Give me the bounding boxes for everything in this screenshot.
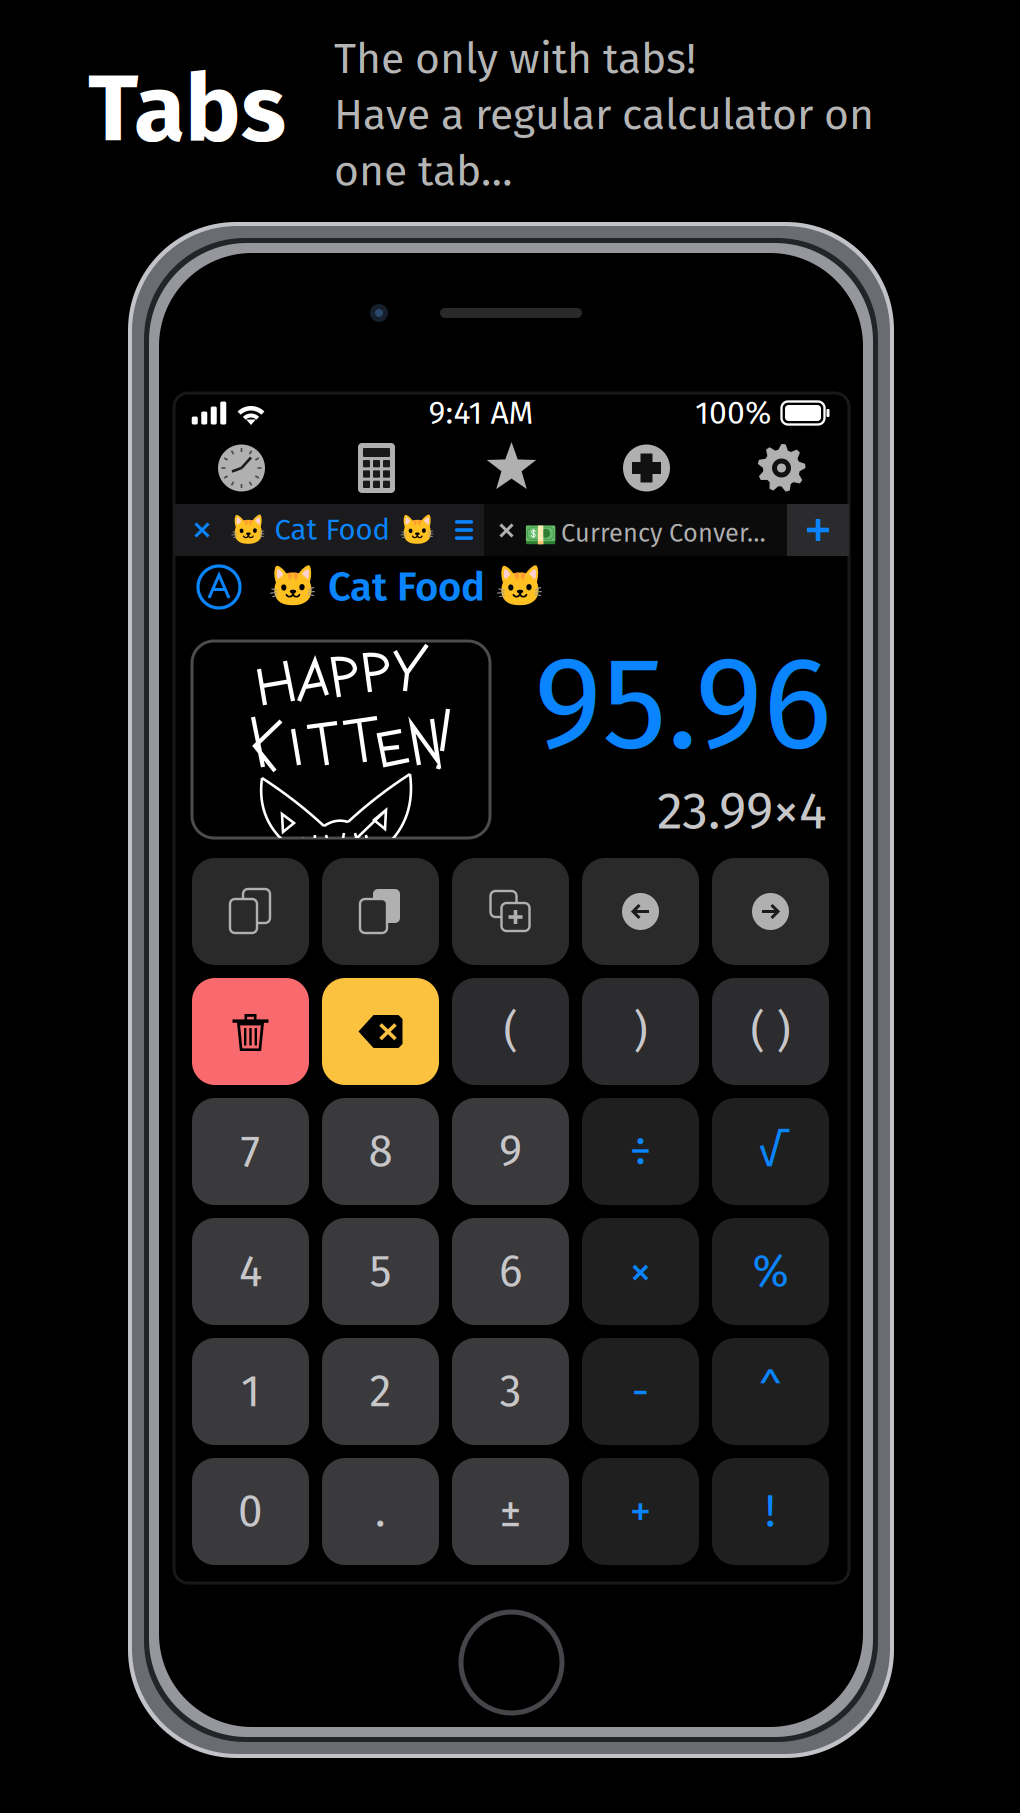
- button[interactable]: ÷: [582, 1098, 699, 1205]
- staticText: (: [503, 1005, 517, 1058]
- button[interactable]: (: [452, 978, 569, 1085]
- button[interactable]: 🐱 Cat Food 🐱: [174, 504, 484, 556]
- button[interactable]: History: [174, 433, 309, 503]
- staticText: 9: [499, 1125, 522, 1178]
- button[interactable]: [322, 858, 439, 965]
- button[interactable]: 8: [322, 1098, 439, 1205]
- staticText: 2: [369, 1365, 391, 1418]
- button[interactable]: 1: [192, 1338, 309, 1445]
- button[interactable]: New tab: [787, 504, 849, 556]
- button[interactable]: ( ): [712, 978, 829, 1085]
- button[interactable]: 💵: [484, 504, 787, 556]
- button[interactable]: [322, 978, 439, 1085]
- staticText: %: [752, 1245, 788, 1298]
- staticText: Tabs: [88, 53, 286, 165]
- button[interactable]: 9: [452, 1098, 569, 1205]
- button[interactable]: ±: [452, 1458, 569, 1565]
- button[interactable]: 3: [452, 1338, 569, 1445]
- staticText: 6: [499, 1245, 522, 1298]
- staticText: 8: [368, 1125, 392, 1178]
- button[interactable]: !: [712, 1458, 829, 1565]
- button[interactable]: 2: [322, 1338, 439, 1445]
- button[interactable]: [582, 858, 699, 965]
- button[interactable]: Favourites: [444, 433, 579, 503]
- button[interactable]: %: [712, 1218, 829, 1325]
- button[interactable]: Calculator: [309, 433, 444, 503]
- staticText: ): [633, 1005, 647, 1058]
- staticText: 💵: [524, 519, 557, 550]
- staticText: -: [631, 1365, 649, 1418]
- staticText: one tab…: [334, 145, 512, 197]
- staticText: 23.99×4: [657, 780, 827, 842]
- staticText: +: [629, 1485, 651, 1538]
- staticText: 7: [240, 1125, 260, 1178]
- staticText: 3: [499, 1365, 521, 1418]
- staticText: 95.96: [534, 626, 832, 782]
- staticText: 1: [241, 1365, 260, 1418]
- staticText: Have a regular calculator on: [334, 89, 874, 140]
- staticText: 4: [239, 1245, 262, 1298]
- staticText: .: [375, 1485, 386, 1538]
- staticText: 100%: [695, 394, 771, 432]
- staticText: 9:41 AM: [428, 394, 533, 432]
- button[interactable]: √: [712, 1098, 829, 1205]
- staticText: ( ): [750, 1005, 790, 1058]
- button[interactable]: -: [582, 1338, 699, 1445]
- button[interactable]: ): [582, 978, 699, 1085]
- button[interactable]: 7: [192, 1098, 309, 1205]
- staticText: 🐱 Cat Food 🐱: [268, 563, 545, 611]
- staticText: !: [765, 1485, 776, 1538]
- staticText: 5: [369, 1245, 391, 1298]
- staticText: 🐱 Cat Food 🐱: [229, 512, 435, 548]
- staticText: The only with tabs!: [334, 33, 696, 84]
- button[interactable]: [192, 858, 309, 965]
- staticText: √: [758, 1125, 783, 1178]
- button[interactable]: [712, 858, 829, 965]
- staticText: 0: [238, 1485, 263, 1538]
- button[interactable]: 6: [452, 1218, 569, 1325]
- button[interactable]: ^: [712, 1338, 829, 1445]
- button[interactable]: .: [322, 1458, 439, 1565]
- button[interactable]: [192, 978, 309, 1085]
- button[interactable]: 5: [322, 1218, 439, 1325]
- staticText: ^: [758, 1365, 782, 1418]
- button[interactable]: 0: [192, 1458, 309, 1565]
- button[interactable]: ×: [582, 1218, 699, 1325]
- staticText: ÷: [629, 1125, 651, 1178]
- staticText: ×: [629, 1245, 651, 1298]
- button[interactable]: +: [582, 1458, 699, 1565]
- button[interactable]: Settings: [714, 433, 849, 503]
- button[interactable]: [452, 858, 569, 965]
- button[interactable]: 4: [192, 1218, 309, 1325]
- button[interactable]: Add: [579, 433, 714, 503]
- staticText: Currency Conver…: [561, 518, 766, 548]
- staticText: ±: [499, 1485, 521, 1538]
